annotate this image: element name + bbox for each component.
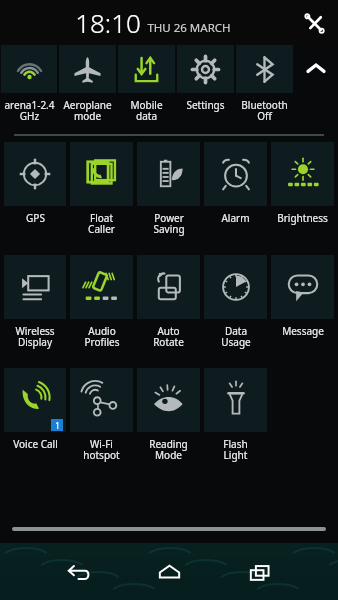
staticText: Audio Profiles [84, 324, 120, 349]
staticText: Voice Call [13, 437, 58, 451]
staticText: Brightness [277, 211, 328, 225]
button[interactable]: Float Caller [70, 142, 133, 252]
staticText: arena1-2.4 GHz [4, 98, 55, 123]
staticText: 1 [55, 420, 60, 431]
button[interactable]: Recents [238, 550, 282, 594]
staticText: Message [282, 324, 324, 338]
staticText: Reading Mode [149, 437, 188, 462]
staticText: THU 26 MARCH [147, 20, 231, 36]
button[interactable]: Message [271, 255, 334, 365]
staticText: Alarm [221, 211, 250, 225]
staticText: Mobile data [130, 98, 163, 123]
button[interactable]: Power Saving [137, 142, 200, 252]
button[interactable]: arena1-2.4 GHz [0, 45, 58, 131]
button[interactable]: Wireless Display [4, 255, 66, 365]
button[interactable]: Bluetooth Off [235, 45, 294, 131]
button[interactable]: 1 [4, 368, 66, 478]
staticText: Data Usage [221, 324, 251, 349]
button[interactable]: Settings [176, 45, 235, 131]
staticText: Flash Light [223, 437, 248, 462]
button[interactable]: GPS [4, 142, 66, 252]
staticText: Aeroplane mode [63, 98, 112, 123]
button[interactable]: Reading Mode [137, 368, 200, 478]
button[interactable]: Auto Rotate [137, 255, 200, 365]
button[interactable]: Data Usage [204, 255, 267, 365]
staticText: Float Caller [88, 211, 115, 236]
staticText: 18:10 [75, 5, 141, 40]
staticText: Auto Rotate [153, 324, 184, 349]
staticText: GPS [26, 211, 45, 225]
button[interactable]: Mobile data [117, 45, 176, 131]
staticText: Wireless Display [15, 324, 55, 349]
button[interactable]: Wi-Fi hotspot [70, 368, 133, 478]
button[interactable]: Expand panel [294, 45, 338, 93]
button[interactable]: Back [56, 550, 100, 594]
button[interactable]: Aeroplane mode [58, 45, 117, 131]
button[interactable]: Alarm [204, 142, 267, 252]
staticText: Settings [186, 98, 225, 112]
staticText: Power Saving [153, 211, 185, 236]
button[interactable]: Quick settings tools [298, 7, 330, 39]
staticText: Wi-Fi hotspot [83, 437, 120, 462]
button[interactable]: Audio Profiles [70, 255, 133, 365]
button[interactable]: Flash Light [204, 368, 267, 478]
button[interactable]: Brightness [271, 142, 334, 252]
staticText: Bluetooth Off [241, 98, 288, 123]
button[interactable]: Home [147, 550, 191, 594]
